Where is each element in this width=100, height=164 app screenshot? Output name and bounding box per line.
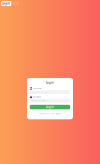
staticText: form xyxy=(13,2,19,5)
staticText: Login xyxy=(46,105,54,109)
button[interactable]: Enter your password xyxy=(30,99,70,103)
staticText: Sign Up xyxy=(56,113,61,115)
staticText: Don't have an account? xyxy=(39,113,55,115)
staticText: Enter your username xyxy=(31,91,47,93)
staticText: Login xyxy=(46,81,54,84)
button[interactable]: Don't have an account? xyxy=(30,112,70,115)
staticText: Password xyxy=(33,96,41,98)
staticText: Username xyxy=(33,87,41,89)
button[interactable]: Login xyxy=(30,105,70,109)
staticText: Enter your password xyxy=(31,100,47,102)
staticText: Login xyxy=(2,2,10,5)
